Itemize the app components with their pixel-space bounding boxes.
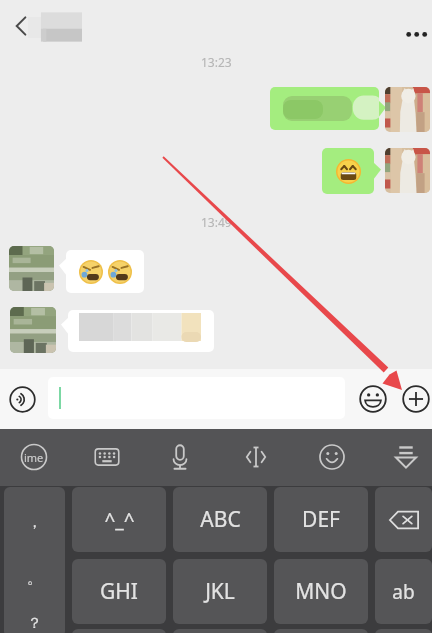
button[interactable]: [270, 87, 379, 130]
button[interactable]: ABC: [173, 487, 267, 552]
button[interactable]: Back: [2, 6, 42, 46]
staticText: ，: [27, 513, 42, 532]
button[interactable]: More options: [394, 12, 432, 50]
button[interactable]: ab: [375, 559, 432, 624]
button[interactable]: ^_^: [72, 487, 166, 552]
staticText: MNO: [295, 577, 347, 606]
button[interactable]: W X Y Z: [274, 629, 368, 633]
button[interactable]: JKL: [173, 559, 267, 624]
button[interactable]: Emoji: [354, 380, 392, 418]
button[interactable]: [322, 148, 374, 194]
button[interactable]: [10, 307, 56, 353]
button[interactable]: T U V: [173, 629, 267, 633]
button[interactable]: [48, 377, 345, 419]
staticText: 13:23: [201, 54, 232, 70]
button[interactable]: Voice input: [154, 431, 206, 483]
button[interactable]: [9, 246, 54, 291]
button[interactable]: Punctuation: [4, 487, 65, 633]
button[interactable]: [66, 250, 144, 293]
button[interactable]: Enter: [375, 629, 432, 633]
button[interactable]: [385, 148, 430, 193]
staticText: ？: [27, 614, 42, 633]
staticText: ime: [24, 450, 44, 465]
button[interactable]: DEF: [274, 487, 368, 552]
staticText: 。: [27, 569, 42, 588]
button[interactable]: Emoji: [306, 431, 358, 483]
button[interactable]: [68, 310, 214, 352]
staticText: ABC: [200, 505, 241, 534]
button[interactable]: Keyboard layout: [81, 431, 133, 483]
staticText: GHI: [100, 577, 138, 606]
button[interactable]: [385, 87, 430, 132]
button[interactable]: Voice message: [3, 380, 41, 418]
staticText: ab: [392, 579, 415, 605]
button[interactable]: More functions: [397, 380, 432, 418]
button[interactable]: GHI: [72, 559, 166, 624]
staticText: 13:49: [201, 214, 232, 230]
staticText: DEF: [302, 505, 340, 534]
button[interactable]: Input method: [8, 431, 60, 483]
staticText: ^_^: [104, 507, 135, 533]
button[interactable]: Backspace: [375, 487, 432, 552]
button[interactable]: Hide keyboard: [380, 431, 432, 483]
button[interactable]: Move cursor: [230, 431, 282, 483]
staticText: JKL: [205, 577, 235, 606]
button[interactable]: MNO: [274, 559, 368, 624]
button[interactable]: P Q R S: [72, 629, 166, 633]
